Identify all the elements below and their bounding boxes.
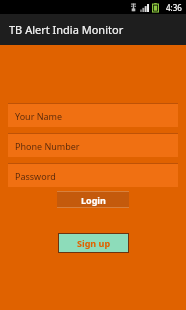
button[interactable]: Password [8, 164, 178, 187]
staticText: TB Alert India Monitor [9, 22, 124, 37]
staticText: Your Name [15, 110, 63, 122]
staticText: Password [15, 170, 56, 182]
staticText: Sign up [77, 237, 111, 249]
button[interactable]: Login [57, 192, 129, 207]
other: Battery [152, 3, 159, 12]
button[interactable]: Phone Number [8, 134, 178, 157]
other: Signal strength [140, 4, 149, 12]
button[interactable]: Sign up [59, 234, 128, 252]
button[interactable]: Your Name [8, 104, 178, 127]
other: USB connected [130, 3, 137, 12]
staticText: Login [81, 194, 106, 206]
staticText: 4:36 [166, 2, 182, 13]
staticText: Phone Number [15, 140, 80, 152]
